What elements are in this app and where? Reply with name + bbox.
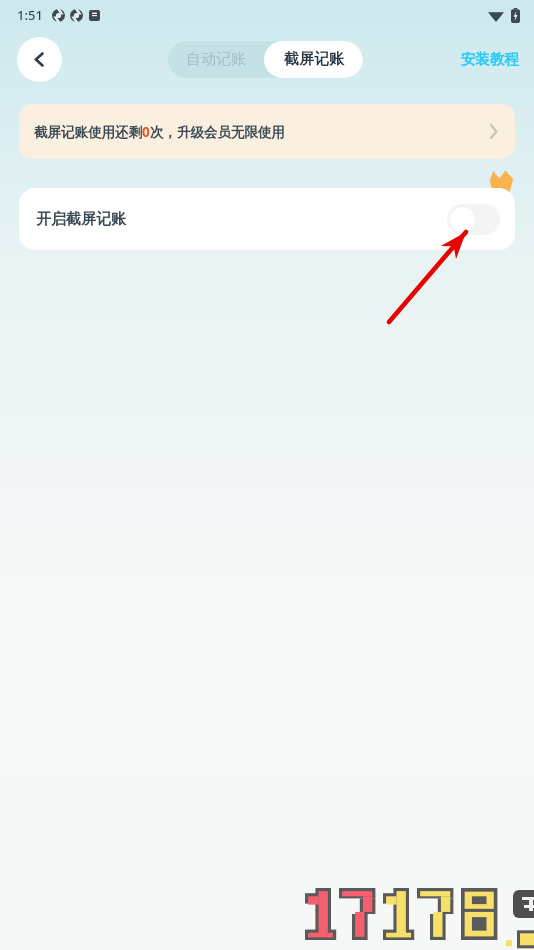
staticText: 安装教程: [461, 50, 519, 68]
staticText: 1:51: [17, 6, 43, 24]
staticText: 自动记账: [186, 50, 246, 69]
button[interactable]: 开启截屏记账: [19, 188, 515, 250]
button[interactable]: 安装教程: [459, 44, 521, 74]
staticText: 截屏记账: [284, 50, 344, 69]
button[interactable]: Back: [17, 37, 62, 82]
button[interactable]: 自动记账: [168, 41, 264, 78]
staticText: 开启截屏记账: [36, 210, 126, 229]
button[interactable]: 截屏记账使用还剩0次，升级会员无限使用: [19, 104, 515, 159]
button[interactable]: 截屏记账: [264, 41, 363, 78]
button[interactable]: Toggle screenshot bookkeeping: [447, 204, 500, 235]
staticText: 截屏记账使用还剩0次，升级会员无限使用: [34, 123, 285, 141]
